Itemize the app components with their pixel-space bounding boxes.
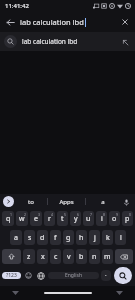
button[interactable]: Expand toolbar (3, 196, 14, 207)
staticText: b (79, 252, 84, 262)
staticText: y (74, 214, 78, 224)
button[interactable]: Back (0, 12, 20, 32)
button[interactable]: Backspace (115, 249, 133, 264)
button[interactable]: to (14, 194, 47, 209)
staticText: i (101, 214, 103, 224)
staticText: z (27, 252, 31, 262)
button[interactable]: Apps (48, 194, 85, 209)
staticText: c (54, 252, 58, 262)
button[interactable]: Change language (35, 266, 47, 285)
button[interactable]: r (44, 211, 55, 226)
button[interactable]: u (83, 211, 94, 226)
button[interactable]: f (50, 230, 61, 245)
button[interactable]: English (48, 272, 99, 279)
button[interactable]: e (30, 211, 42, 226)
button[interactable]: Shift (2, 249, 21, 264)
staticText: ?123 (6, 272, 17, 279)
staticText: e (34, 214, 38, 224)
staticText: 11:41:42 (5, 2, 29, 10)
staticText: English (65, 272, 83, 279)
staticText: 5 (64, 212, 67, 217)
staticText: u (86, 214, 91, 224)
button[interactable]: q (2, 211, 14, 226)
staticText: j (94, 233, 96, 243)
staticText: p (125, 214, 130, 224)
staticText: l (120, 233, 122, 243)
staticText: n (92, 252, 97, 262)
staticText: x (41, 252, 45, 262)
button[interactable]: lab calculation lbd (0, 32, 135, 51)
button[interactable]: Search (114, 267, 132, 284)
button[interactable]: v (63, 249, 74, 264)
staticText: 1 (10, 212, 13, 217)
staticText: 6 (77, 212, 80, 217)
button[interactable]: w (16, 211, 28, 226)
button[interactable]: Emoji (22, 266, 35, 285)
button[interactable]: g (63, 230, 74, 245)
staticText: d (40, 233, 45, 243)
staticText: 3 (38, 212, 41, 217)
staticText: t (61, 214, 64, 224)
staticText: to (28, 198, 34, 206)
staticText: h (79, 233, 84, 243)
button[interactable]: t (57, 211, 68, 226)
staticText: q (6, 214, 11, 224)
button[interactable]: Voice input (120, 196, 132, 208)
staticText: a (101, 198, 105, 206)
staticText: v (67, 252, 71, 262)
button[interactable]: a (86, 194, 120, 209)
button[interactable]: y (70, 211, 81, 226)
staticText: g (66, 233, 71, 243)
staticText: o (112, 214, 117, 224)
button[interactable]: x (37, 249, 48, 264)
staticText: w (19, 214, 25, 224)
staticText: a (14, 233, 18, 243)
button[interactable]: k (102, 230, 113, 245)
button[interactable]: ?123 (2, 272, 21, 279)
button[interactable]: Insert suggestion (119, 36, 131, 48)
staticText: lab calculation lbd (22, 37, 119, 46)
button[interactable]: n (89, 249, 100, 264)
button[interactable]: lab calculation lbd (20, 17, 115, 27)
button[interactable]: s (24, 230, 35, 245)
staticText: 2 (24, 212, 27, 217)
button[interactable]: d (37, 230, 48, 245)
staticText: Apps (59, 198, 74, 206)
staticText: 9 (116, 212, 119, 217)
staticText: 8 (103, 212, 106, 217)
button[interactable]: p (122, 211, 133, 226)
button[interactable]: . (101, 270, 111, 281)
staticText: 0 (129, 212, 132, 217)
button[interactable]: m (102, 249, 113, 264)
button[interactable]: a (10, 230, 22, 245)
button[interactable]: o (109, 211, 120, 226)
button[interactable]: z (23, 249, 35, 264)
staticText: r (48, 214, 51, 224)
staticText: 7 (90, 212, 93, 217)
staticText: lab calculation lbd (20, 17, 84, 27)
button[interactable]: h (76, 230, 87, 245)
button[interactable]: b (76, 249, 87, 264)
button[interactable]: Clear query (115, 12, 135, 32)
staticText: m (104, 252, 111, 262)
staticText: . (105, 270, 107, 278)
staticText: k (106, 233, 110, 243)
button[interactable]: l (115, 230, 126, 245)
staticText: s (28, 233, 32, 243)
button[interactable]: i (96, 211, 107, 226)
button[interactable]: j (89, 230, 100, 245)
staticText: 4 (51, 212, 54, 217)
button[interactable]: c (50, 249, 61, 264)
staticText: f (54, 233, 57, 243)
